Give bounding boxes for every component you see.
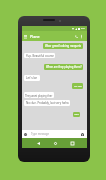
button[interactable]: Haha: [73, 112, 80, 117]
button[interactable]: Home: [51, 138, 59, 148]
button[interactable]: Attach: [80, 132, 85, 137]
staticText: When are they playing there?: [46, 65, 82, 69]
staticText: 5:41: [81, 27, 86, 30]
staticText: Wow great looking racquets: [45, 44, 82, 48]
button[interactable]: Recent apps: [68, 138, 76, 148]
button[interactable]: Menu: [22, 33, 28, 39]
staticText: Yup. Beautiful course: [26, 54, 54, 58]
button[interactable]: Emoji: [23, 132, 28, 137]
button[interactable]: When are they playing there?: [44, 64, 83, 70]
staticText: No clue. Probably, but very haha: [26, 101, 69, 105]
button[interactable]: No clue. Probably, but very haha: [24, 100, 70, 106]
button[interactable]: They want playing ther: [24, 92, 54, 98]
staticText: Type message: [31, 132, 49, 136]
button[interactable]: Call: [73, 33, 79, 39]
button[interactable]: Back: [34, 138, 42, 148]
button[interactable]: Yup. Beautiful course: [24, 53, 55, 58]
staticText: They want playing ther: [25, 94, 53, 97]
staticText: Let's be: [26, 76, 38, 80]
button[interactable]: Let's be: [24, 75, 40, 81]
button[interactable]: Oh nice: [72, 83, 83, 89]
button[interactable]: Wow great looking racquets: [43, 43, 83, 49]
staticText: Oh nice: [74, 85, 82, 88]
button[interactable]: More options: [79, 34, 84, 39]
staticText: Plane: [30, 34, 40, 39]
staticText: Haha: [74, 113, 79, 116]
